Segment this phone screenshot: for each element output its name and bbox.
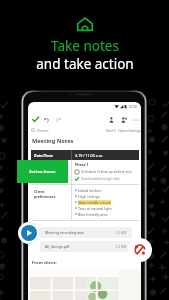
button[interactable]: All_listings.pdf — [40, 241, 132, 252]
staticText: Bike-friendly area — [78, 212, 108, 217]
staticText: Island kitchen — [78, 188, 102, 193]
staticText: and take action — [36, 55, 134, 73]
button[interactable]: Play recording — [18, 222, 40, 244]
staticText: 12:30 — [128, 104, 138, 109]
staticText: Action items — [29, 169, 56, 175]
staticText: High ceilings — [78, 194, 100, 199]
staticText: Client — [34, 189, 45, 194]
staticText: preferences — [34, 194, 56, 199]
button[interactable]: More options — [131, 115, 140, 124]
button[interactable]: Meeting recording.wav — [40, 227, 132, 238]
staticText: Near middle school — [78, 200, 111, 205]
button[interactable]: Action items — [17, 160, 68, 183]
staticText: Take notes — [51, 37, 119, 55]
staticText: Tons of natural light — [78, 206, 112, 211]
button[interactable]: Add person — [119, 115, 128, 124]
staticText: 1.5 MB — [115, 230, 127, 235]
staticText: Phase 1 — [75, 162, 89, 167]
staticText: Clients — [37, 128, 49, 133]
staticText: All_listings.pdf — [45, 244, 70, 249]
staticText: From client: — [32, 260, 57, 266]
staticText: Date/Time — [34, 153, 53, 158]
button[interactable]: Undo — [42, 115, 51, 124]
staticText: Send walkthrough info. — [81, 176, 121, 181]
staticText: Schedule follow up before trip. — [81, 169, 133, 174]
button[interactable]: Open PDF — [128, 238, 152, 262]
staticText: Meeting Notes — [32, 137, 74, 145]
staticText: 1.2 MB — [115, 244, 127, 249]
button[interactable]: Done — [31, 115, 40, 124]
staticText: Meeting recording.wav — [45, 230, 84, 235]
staticText: Neil S · Open listings — [106, 128, 141, 133]
button[interactable]: Redo — [53, 115, 62, 124]
staticText: 4-19 / 11:00 a.m. — [75, 153, 103, 158]
button[interactable]: People — [107, 115, 116, 124]
